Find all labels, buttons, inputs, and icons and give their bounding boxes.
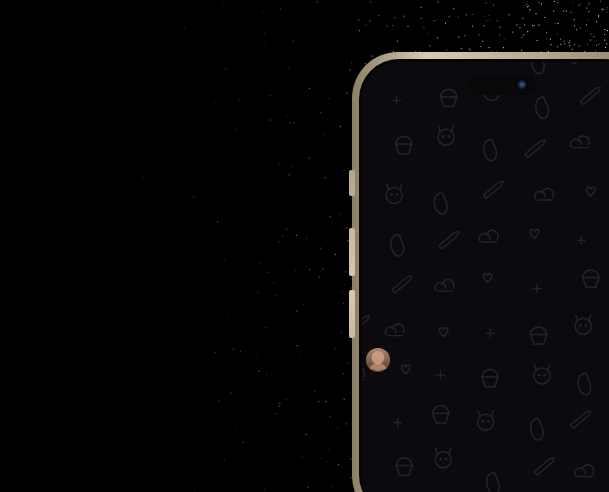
button[interactable]: Profile photo: [366, 348, 390, 372]
